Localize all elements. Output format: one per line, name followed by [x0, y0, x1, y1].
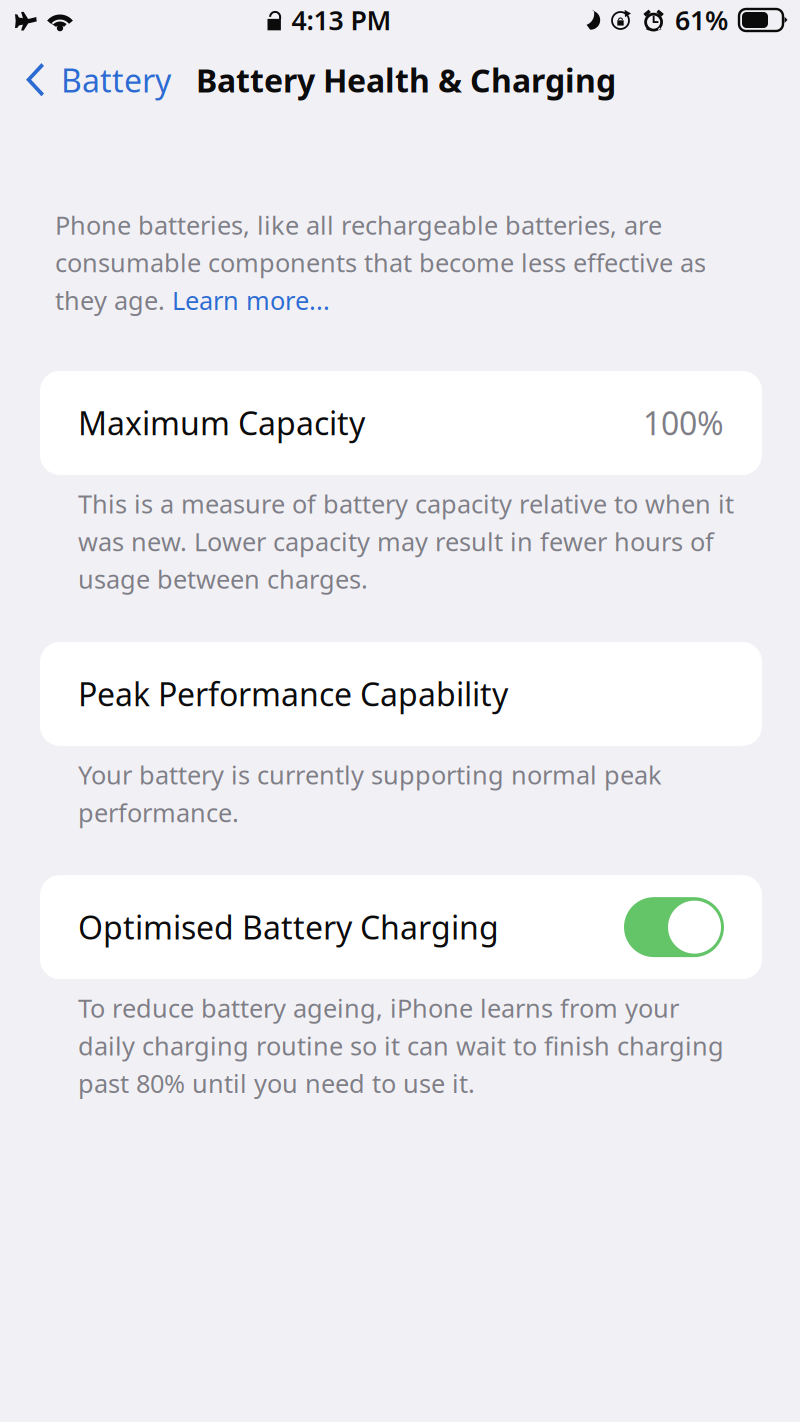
staticText: Optimised Battery Charging	[78, 906, 499, 948]
staticText: To reduce battery ageing, iPhone learns …	[78, 991, 724, 1100]
button[interactable]: Battery	[0, 52, 181, 108]
staticText: 61%	[675, 2, 728, 38]
staticText: Phone batteries, like all rechargeable b…	[55, 208, 706, 317]
staticText: 100%	[643, 402, 724, 444]
staticText: Maximum Capacity	[78, 402, 365, 444]
button[interactable]: Optimised Battery Charging	[624, 897, 724, 957]
button[interactable]: Phone batteries, like all rechargeable b…	[0, 208, 720, 317]
staticText: 4:13 PM	[291, 2, 391, 38]
staticText: Your battery is currently supporting nor…	[78, 758, 662, 829]
button[interactable]: Peak Performance Capability	[0, 642, 762, 746]
staticText: Battery Health & Charging	[196, 59, 616, 101]
staticText: Battery	[61, 59, 171, 101]
staticText: Peak Performance Capability	[78, 673, 508, 715]
staticText: This is a measure of battery capacity re…	[78, 487, 734, 596]
